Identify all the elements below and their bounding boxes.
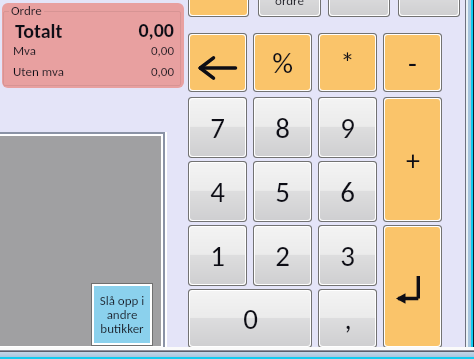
button[interactable]: Enter bbox=[385, 227, 440, 346]
staticText: Totalt bbox=[15, 19, 63, 43]
button[interactable]: 0 bbox=[190, 291, 310, 346]
staticText: 5 bbox=[275, 174, 290, 209]
staticText: 9 bbox=[340, 110, 355, 145]
staticText: 8 bbox=[275, 110, 290, 145]
staticText: Slå opp i andre butikker bbox=[94, 293, 150, 336]
staticText: 0,00 bbox=[101, 43, 174, 59]
button[interactable]: Slå opp i andre butikker bbox=[94, 286, 150, 343]
button[interactable]: 7 bbox=[190, 99, 245, 156]
staticText: Ordre bbox=[11, 3, 42, 19]
staticText: 3 bbox=[340, 238, 355, 273]
staticText: Uten mva bbox=[13, 64, 64, 80]
staticText: 1 bbox=[210, 238, 225, 273]
staticText: 7 bbox=[210, 110, 225, 145]
button[interactable]: Kunde bbox=[330, 0, 388, 15]
staticText: Hent ordre bbox=[275, 0, 304, 9]
button[interactable]: 8 bbox=[255, 99, 310, 156]
button[interactable]: % bbox=[255, 35, 310, 90]
button[interactable]: - bbox=[385, 35, 440, 90]
staticText: % bbox=[272, 45, 293, 80]
staticText: , bbox=[344, 301, 352, 336]
button[interactable]: 6 bbox=[320, 163, 375, 220]
staticText: Mva bbox=[13, 43, 37, 59]
button[interactable]: , bbox=[320, 291, 375, 346]
button[interactable]: * bbox=[320, 35, 375, 90]
button[interactable]: 5 bbox=[255, 163, 310, 220]
staticText: 0,00 bbox=[101, 18, 174, 42]
staticText: 4 bbox=[210, 174, 225, 209]
button[interactable]: Hent ordre bbox=[260, 0, 319, 15]
button[interactable]: 1 bbox=[190, 227, 245, 284]
staticText: - bbox=[408, 45, 417, 80]
staticText: 2 bbox=[275, 238, 290, 273]
button[interactable]: + bbox=[385, 99, 440, 220]
button[interactable]: 3 bbox=[320, 227, 375, 284]
staticText: * bbox=[340, 45, 355, 80]
staticText: + bbox=[406, 143, 420, 177]
staticText: 0 bbox=[243, 301, 258, 336]
staticText: 0,00 bbox=[101, 64, 174, 80]
button[interactable]: 9 bbox=[320, 99, 375, 156]
button[interactable]: Slett bbox=[190, 35, 245, 90]
button[interactable]: 2 bbox=[255, 227, 310, 284]
staticText: 6 bbox=[340, 174, 355, 209]
button[interactable]: 4 bbox=[190, 163, 245, 220]
button[interactable]: Ny ordre bbox=[190, 0, 247, 15]
button[interactable]: Meny bbox=[400, 0, 458, 15]
